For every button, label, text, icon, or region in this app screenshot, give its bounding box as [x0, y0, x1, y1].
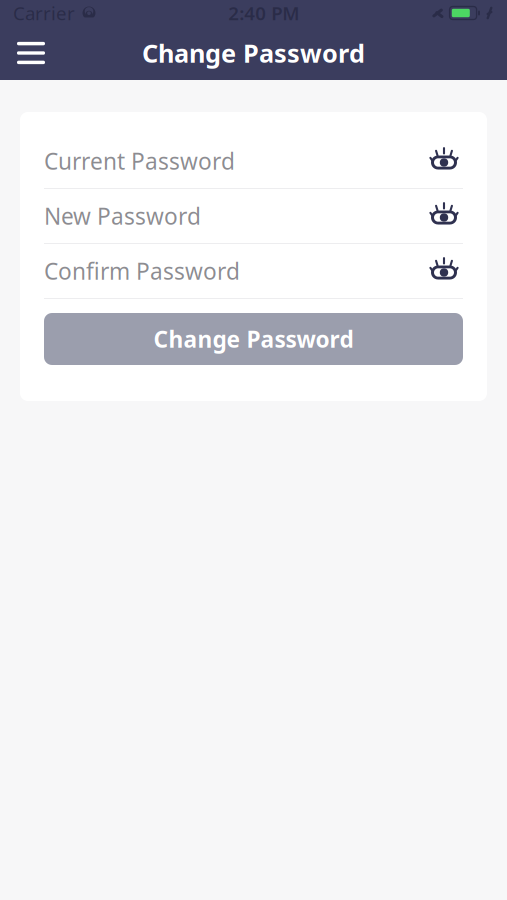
staticText: 2:40 PM [228, 1, 299, 25]
staticText: Change Password [153, 324, 353, 354]
staticText: Current Password [44, 146, 235, 176]
button[interactable]: Change Password [44, 313, 463, 365]
staticText: Confirm Password [44, 256, 240, 286]
button[interactable]: Menu [8, 31, 54, 75]
staticText: Carrier [13, 1, 75, 25]
button[interactable]: Show Confirm Password [425, 252, 463, 290]
button[interactable]: Show New Password [425, 197, 463, 235]
staticText: New Password [44, 201, 201, 231]
staticText: Change Password [142, 36, 365, 70]
button[interactable]: Show Current Password [425, 142, 463, 180]
